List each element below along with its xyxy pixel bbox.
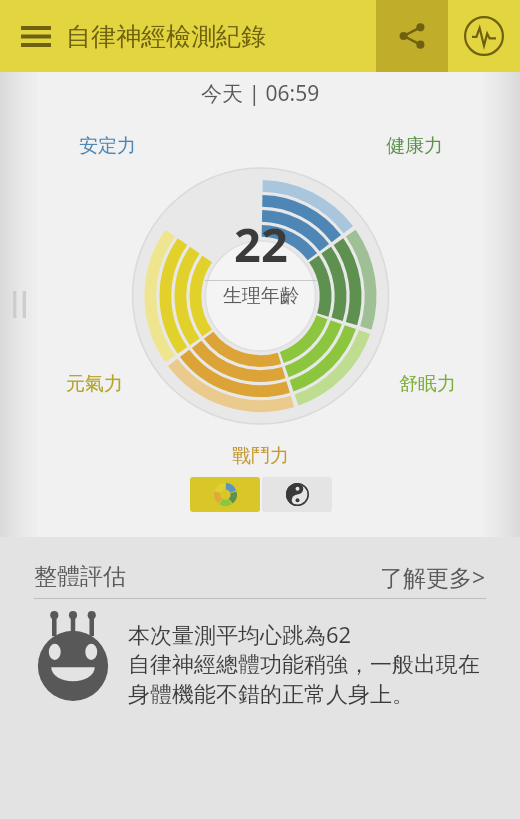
staticText: 了解更多> [380, 561, 486, 592]
staticText: 健康力 [386, 134, 443, 158]
staticText: 整體評估 [34, 562, 126, 591]
button[interactable]: Balance chart view [190, 477, 260, 512]
staticText: 自律神經檢測紀錄 [66, 21, 266, 52]
button[interactable]: Share [376, 0, 448, 72]
staticText: 戰鬥力 [232, 444, 289, 468]
button[interactable]: Menu [4, 4, 68, 68]
staticText: 舒眠力 [399, 372, 456, 396]
button[interactable]: Start measurement [448, 0, 520, 72]
staticText: 生理年齡 [223, 284, 299, 308]
staticText: 22 [234, 212, 288, 276]
button[interactable]: 了解更多> [380, 561, 486, 592]
staticText: 元氣力 [66, 372, 123, 396]
staticText: 安定力 [79, 134, 136, 158]
staticText: 今天 | 06:59 [201, 79, 320, 108]
staticText: 本次量測平均心跳為62 自律神經總體功能稍強，一般出現在身體機能不錯的正常人身上… [128, 619, 496, 709]
button[interactable]: Yin yang view [262, 477, 332, 512]
